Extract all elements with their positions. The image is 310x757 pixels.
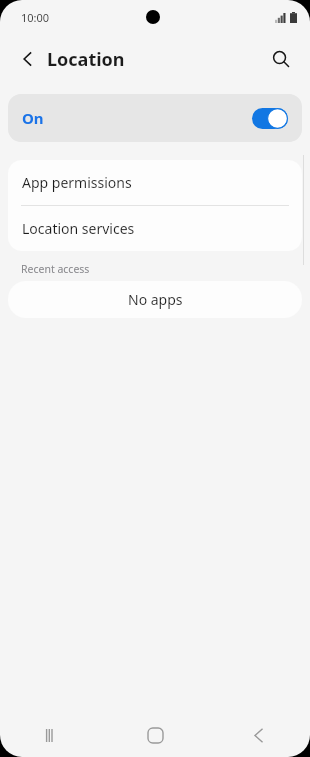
button[interactable]: No apps	[8, 281, 302, 318]
staticText: Recent access	[21, 262, 90, 276]
button[interactable]: Back	[207, 713, 310, 757]
staticText: No apps	[128, 290, 183, 309]
button[interactable]: App permissions	[8, 160, 302, 205]
staticText: Location services	[22, 219, 135, 238]
button[interactable]: Location services	[8, 206, 302, 251]
staticText: App permissions	[22, 173, 132, 192]
staticText: Location	[47, 47, 125, 72]
staticText: On	[22, 108, 44, 128]
button[interactable]: Search	[263, 41, 299, 77]
button[interactable]: Recent apps	[0, 713, 104, 757]
button[interactable]: Home	[104, 713, 207, 757]
staticText: 10:00	[21, 10, 50, 25]
button[interactable]: Back	[10, 41, 46, 77]
button[interactable]: On	[8, 94, 302, 142]
